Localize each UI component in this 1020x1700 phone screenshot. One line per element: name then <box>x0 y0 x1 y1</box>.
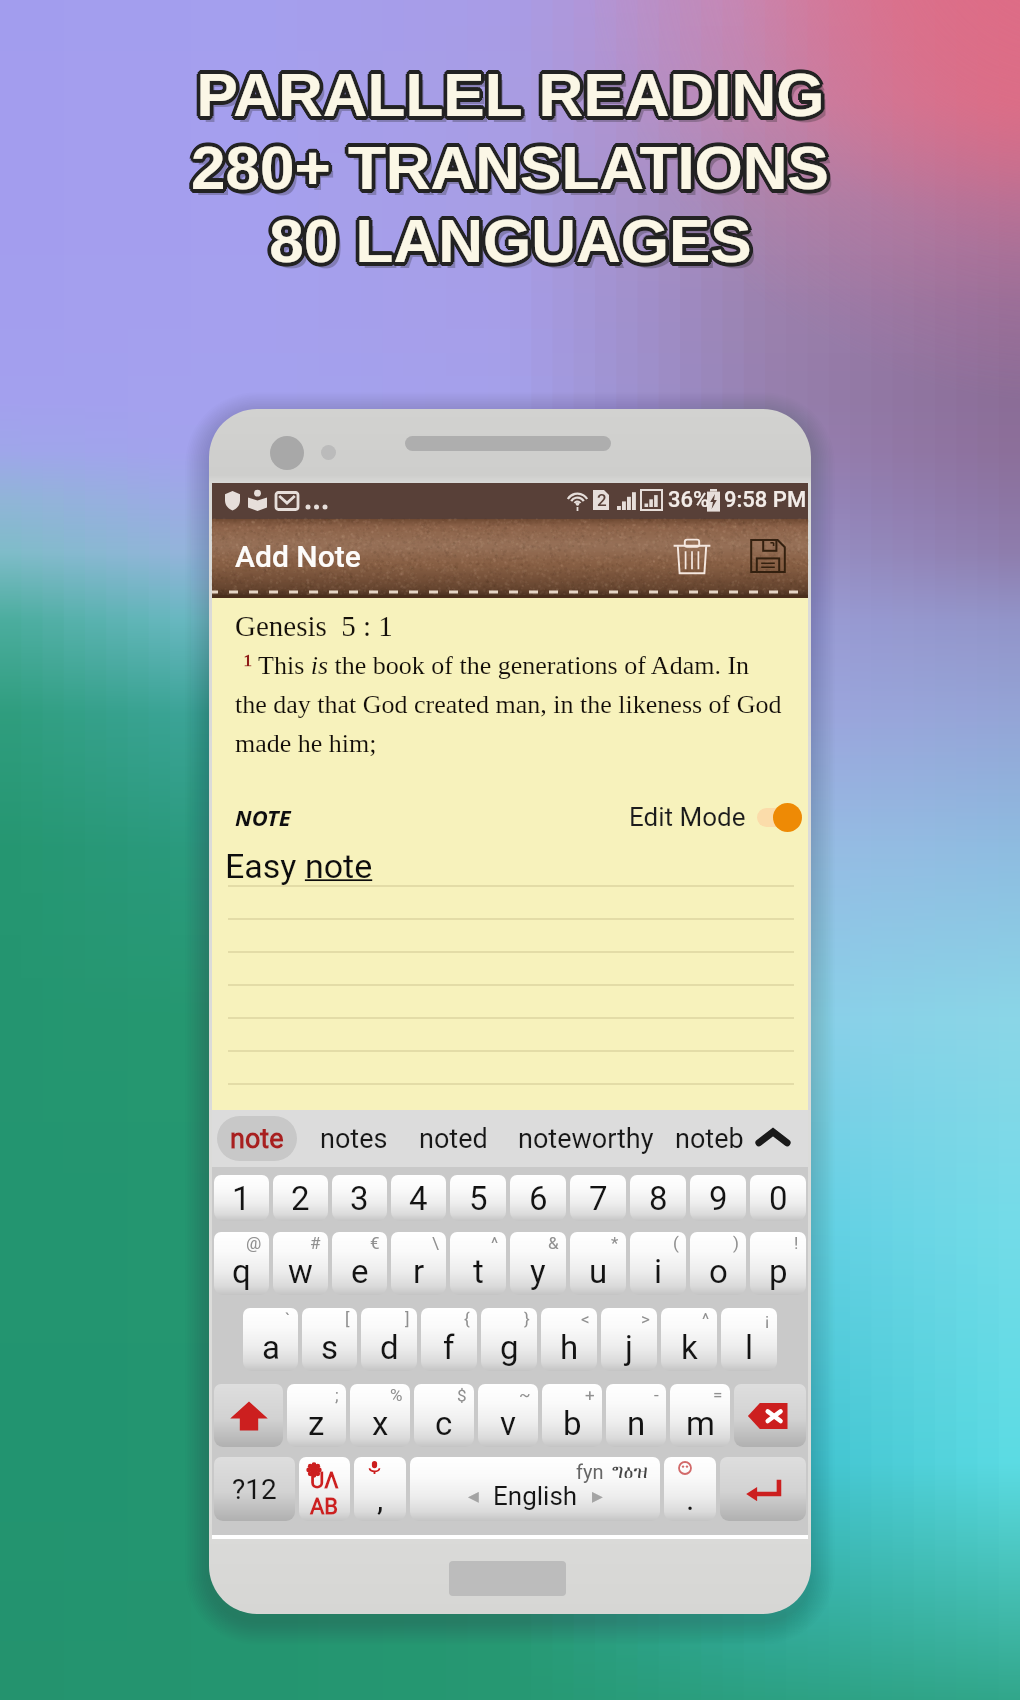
button[interactable]: ?12 <box>214 1457 295 1521</box>
button[interactable]: = <box>670 1384 730 1447</box>
staticText: noted <box>419 1123 488 1155</box>
button[interactable]: ^ <box>661 1308 717 1371</box>
button[interactable]: ¡ <box>721 1308 777 1371</box>
button[interactable]: 2 <box>273 1175 328 1221</box>
staticText: 9:58 PM <box>724 487 807 513</box>
staticText: 280+ TRANSLATIONS <box>193 136 831 205</box>
staticText: j <box>625 1328 633 1367</box>
staticText: - <box>654 1385 659 1405</box>
staticText: l <box>745 1328 754 1367</box>
staticText: 280+ TRANSLATIONS <box>194 131 832 200</box>
button[interactable]: * <box>570 1232 626 1295</box>
button[interactable]: Save note <box>740 528 796 584</box>
staticText: notes <box>320 1123 388 1155</box>
button[interactable]: noteb <box>675 1110 744 1167</box>
staticText: 280+ TRANSLATIONS <box>188 131 826 200</box>
staticText: 280+ TRANSLATIONS <box>190 137 828 206</box>
staticText: 80 LANGUAGES <box>270 202 753 271</box>
staticText: } <box>524 1309 530 1329</box>
staticText: m <box>686 1404 715 1443</box>
staticText: 280+ TRANSLATIONS <box>189 136 827 205</box>
button[interactable]: ) <box>690 1232 746 1295</box>
button[interactable]: ] <box>361 1308 417 1371</box>
button[interactable]: 6 <box>510 1175 566 1221</box>
staticText: h <box>560 1328 579 1367</box>
button[interactable]: - <box>606 1384 666 1447</box>
staticText: 1 This is the book of the generations of… <box>235 651 782 758</box>
button[interactable]: ^ <box>450 1232 506 1295</box>
button[interactable]: } <box>481 1308 537 1371</box>
button[interactable]: 7 <box>570 1175 626 1221</box>
staticText: = <box>713 1385 723 1405</box>
button[interactable]: \ <box>391 1232 446 1295</box>
button[interactable]: ! <box>750 1232 806 1295</box>
staticText: PARALLEL READING <box>200 60 829 129</box>
staticText: z <box>308 1404 325 1443</box>
staticText: NOTE <box>235 802 291 832</box>
button[interactable]: ` <box>243 1308 298 1371</box>
staticText: 80 LANGUAGES <box>271 203 754 272</box>
staticText: + <box>585 1385 595 1405</box>
button[interactable]: 3 <box>332 1175 387 1221</box>
button[interactable]: noteworthy <box>518 1110 654 1167</box>
button[interactable]: 8 <box>630 1175 686 1221</box>
button[interactable]: . <box>664 1457 716 1521</box>
button[interactable]: ( <box>630 1232 686 1295</box>
button[interactable]: 0 <box>750 1175 806 1221</box>
staticText: 80 LANGUAGES <box>270 210 753 279</box>
staticText: { <box>464 1309 470 1329</box>
button[interactable]: Collapse suggestions <box>750 1110 796 1167</box>
staticText: PARALLEL READING <box>194 63 823 132</box>
button[interactable]: 1 <box>214 1175 269 1221</box>
button[interactable]: Delete note <box>664 528 720 584</box>
button[interactable]: Enter <box>720 1457 806 1521</box>
staticText: 80 LANGUAGES <box>266 204 749 273</box>
staticText: 80 LANGUAGES <box>272 208 755 277</box>
button[interactable]: > <box>601 1308 657 1371</box>
staticText: c <box>435 1404 453 1443</box>
staticText: 36% <box>668 487 710 513</box>
staticText: PARALLEL READING <box>199 58 828 127</box>
staticText: 0 <box>769 1179 788 1218</box>
staticText: PARALLEL READING <box>193 62 822 131</box>
button[interactable]: , <box>354 1457 406 1521</box>
staticText: [ <box>345 1309 350 1329</box>
staticText: PARALLEL READING <box>199 62 828 131</box>
button[interactable]: Backspace <box>734 1384 806 1447</box>
button[interactable]: 4 <box>391 1175 446 1221</box>
button[interactable]: note <box>217 1116 297 1161</box>
button[interactable]: 9 <box>690 1175 746 1221</box>
button[interactable]: notes <box>320 1110 388 1167</box>
button[interactable]: @ <box>214 1232 269 1295</box>
staticText: x <box>372 1404 389 1443</box>
staticText: 80 LANGUAGES <box>268 202 751 271</box>
staticText: n <box>627 1404 646 1443</box>
staticText: 4 <box>409 1179 428 1218</box>
staticText: 280+ TRANSLATIONS <box>193 130 831 199</box>
button[interactable]: 5 <box>450 1175 506 1221</box>
button[interactable]: { <box>421 1308 477 1371</box>
button[interactable]: + <box>542 1384 602 1447</box>
button[interactable]: & <box>510 1232 566 1295</box>
button[interactable]: Edit Mode <box>629 802 802 832</box>
button[interactable]: UΛ <box>299 1457 350 1521</box>
staticText: ~ <box>519 1385 531 1405</box>
staticText: q <box>232 1252 251 1291</box>
button[interactable]: noted <box>419 1110 488 1167</box>
staticText: 3 <box>350 1179 369 1218</box>
staticText: b <box>563 1404 582 1443</box>
button[interactable]: ; <box>287 1384 346 1447</box>
button[interactable]: $ <box>414 1384 474 1447</box>
button[interactable]: fyn <box>410 1457 660 1521</box>
button[interactable]: [ <box>302 1308 357 1371</box>
staticText: noteb <box>675 1123 744 1155</box>
button[interactable]: ~ <box>478 1384 538 1447</box>
staticText: note <box>230 1123 284 1155</box>
button[interactable]: < <box>541 1308 597 1371</box>
button[interactable]: € <box>332 1232 387 1295</box>
button[interactable]: Shift <box>214 1384 283 1447</box>
staticText: # <box>310 1233 321 1253</box>
staticText: noteworthy <box>518 1123 654 1155</box>
button[interactable]: # <box>273 1232 328 1295</box>
button[interactable]: % <box>350 1384 410 1447</box>
